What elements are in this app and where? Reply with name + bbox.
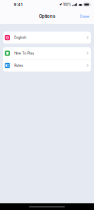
staticText: How To Play <box>14 51 34 55</box>
button[interactable]: English <box>3 32 91 44</box>
staticText: Options <box>39 14 55 19</box>
staticText: 100% <box>63 2 71 6</box>
staticText: 9:41 <box>14 2 23 7</box>
button[interactable]: Rules <box>3 59 91 71</box>
button[interactable]: How To Play <box>3 47 91 59</box>
staticText: Done <box>80 14 89 19</box>
staticText: English <box>14 36 26 40</box>
button[interactable]: Done <box>78 12 91 21</box>
staticText: Rules <box>14 63 23 67</box>
